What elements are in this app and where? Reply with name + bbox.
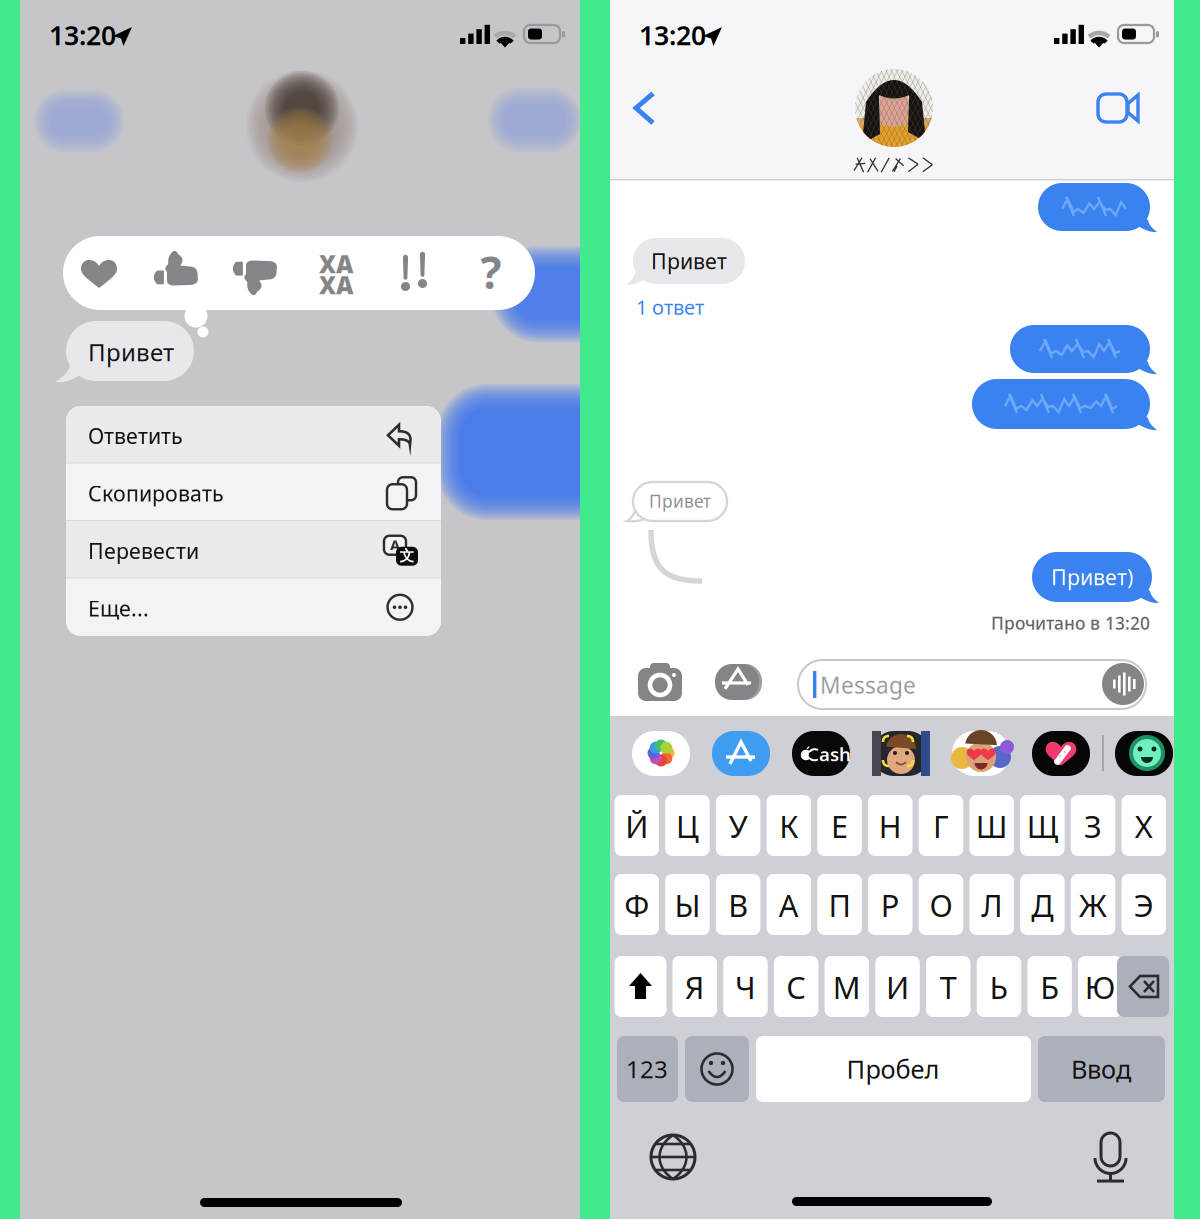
button[interactable]: Б (610, 0, 1174, 1219)
button[interactable]: Ч (610, 0, 1174, 1219)
staticText: Ш (976, 806, 1008, 846)
staticText: Х (1135, 806, 1153, 846)
staticText: С (786, 967, 806, 1007)
staticText: Я (685, 967, 705, 1007)
button[interactable]: Contact (610, 0, 1174, 1219)
button[interactable]: Т (610, 0, 1174, 1219)
staticText: К (779, 806, 798, 846)
button[interactable]: Apps (610, 0, 1174, 1219)
button[interactable]: 1 ответ (610, 0, 1174, 1219)
button[interactable]: Э (610, 0, 1174, 1219)
button[interactable]: С (610, 0, 1174, 1219)
button[interactable]: Ф (610, 0, 1174, 1219)
button[interactable]: Shift (610, 0, 1174, 1219)
button[interactable]: М (610, 0, 1174, 1219)
staticText: ? (480, 243, 501, 301)
staticText: Э (1134, 885, 1154, 925)
button[interactable]: Й (610, 0, 1174, 1219)
button[interactable]: Ш (610, 0, 1174, 1219)
button[interactable]: Switch keyboard (610, 0, 1174, 1219)
button[interactable]: О (610, 0, 1174, 1219)
staticText: Привет) (1051, 563, 1133, 591)
button[interactable]: Back (610, 0, 1174, 1219)
staticText: 123 (626, 1053, 668, 1085)
button[interactable]: Sticker (610, 0, 1174, 1219)
button[interactable]: Д (610, 0, 1174, 1219)
button[interactable]: Щ (610, 0, 1174, 1219)
staticText: 13:20 (49, 17, 116, 53)
button[interactable]: В (610, 0, 1174, 1219)
button[interactable]: Я (610, 0, 1174, 1219)
staticText: А (779, 885, 799, 925)
staticText: Еще... (88, 594, 149, 622)
staticText: A (390, 535, 400, 554)
button[interactable]: Пробел (610, 0, 1174, 1219)
button[interactable]: З (610, 0, 1174, 1219)
button[interactable]: Л (610, 0, 1174, 1219)
button[interactable]: FaceTime (610, 0, 1174, 1219)
button[interactable]: Х (610, 0, 1174, 1219)
button[interactable]: Ц (610, 0, 1174, 1219)
staticText: Ч (735, 967, 756, 1007)
staticText: Ы (674, 885, 700, 925)
button[interactable]: Emoji (610, 0, 1174, 1219)
staticText: Ж (1079, 885, 1107, 925)
staticText: Перевести (88, 537, 199, 565)
staticText: О (929, 885, 952, 925)
button[interactable]: Скопировать (20, 0, 580, 1219)
staticText: Т (940, 967, 957, 1007)
staticText: 文 (399, 547, 414, 565)
staticText: Ф (624, 885, 649, 925)
staticText: 13:20 (639, 17, 706, 53)
staticText: Message (820, 670, 916, 700)
button[interactable]: Apple Cash (610, 0, 1174, 1219)
button[interactable]: App Store (610, 0, 1174, 1219)
button[interactable]: Memoji (610, 0, 1174, 1219)
button[interactable]: Memoji sticker (610, 0, 1174, 1219)
staticText: Л (981, 885, 1002, 925)
staticText: Ввод (1071, 1052, 1131, 1086)
button[interactable]: Dictation (610, 0, 1174, 1219)
staticText: 1 ответ (636, 294, 704, 320)
button[interactable]: А (610, 0, 1174, 1219)
button[interactable]: Р (610, 0, 1174, 1219)
button[interactable]: ХА (20, 0, 580, 1219)
button[interactable]: Fitness (610, 0, 1174, 1219)
button[interactable]: П (610, 0, 1174, 1219)
staticText: Скопировать (88, 479, 224, 507)
staticText: Г (933, 806, 949, 846)
button[interactable]: Еще... (20, 0, 580, 1219)
button[interactable]: 123 (610, 0, 1174, 1219)
staticText: В (728, 885, 748, 925)
button[interactable]: Delete (610, 0, 1174, 1219)
button[interactable]: И (610, 0, 1174, 1219)
staticText: Ь (989, 967, 1008, 1007)
staticText: П (828, 885, 850, 925)
staticText: Б (1040, 967, 1059, 1007)
button[interactable]: Ю (610, 0, 1174, 1219)
button[interactable]: У (610, 0, 1174, 1219)
button[interactable]: Н (610, 0, 1174, 1219)
button[interactable]: Г (610, 0, 1174, 1219)
button[interactable]: Photos (610, 0, 1174, 1219)
button[interactable]: Ввод (610, 0, 1174, 1219)
button[interactable]: Ж (610, 0, 1174, 1219)
staticText: З (1084, 806, 1102, 846)
staticText: Ц (676, 806, 699, 846)
staticText: И (886, 967, 909, 1007)
button[interactable]: Ь (610, 0, 1174, 1219)
button[interactable]: Перевести (20, 0, 580, 1219)
button[interactable]: Message field (610, 0, 1174, 1219)
staticText: М (833, 967, 861, 1007)
button[interactable]: Camera (610, 0, 1174, 1219)
button[interactable]: Е (610, 0, 1174, 1219)
button[interactable]: К (610, 0, 1174, 1219)
staticText: Привет (649, 489, 711, 512)
staticText: Р (881, 885, 900, 925)
staticText: Ответить (88, 422, 183, 450)
staticText: Ю (1085, 967, 1116, 1007)
staticText: Н (879, 806, 902, 846)
button[interactable]: Ответить (20, 0, 580, 1219)
staticText: ХА (319, 248, 353, 280)
button[interactable]: Ы (610, 0, 1174, 1219)
